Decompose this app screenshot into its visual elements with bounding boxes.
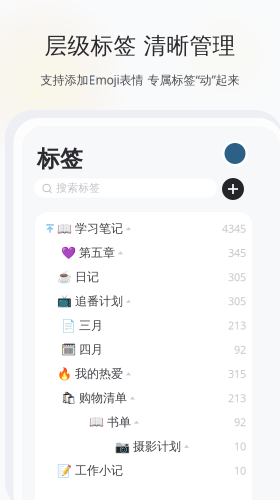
staticText: 层级标签 清晰管理 [44,32,235,60]
staticText: 我的热爱 [75,366,123,381]
button[interactable]: 📖 [35,410,252,434]
staticText: 追番计划 [75,294,123,308]
staticText: 📖 [89,415,104,429]
staticText: 📖 [57,222,72,235]
button[interactable]: ☕️ [35,265,252,289]
button[interactable]: 📷 [35,434,252,458]
staticText: 4345 [222,221,246,236]
staticText: 💜 [61,246,76,260]
staticText: 工作小记 [75,463,123,478]
staticText: 日记 [75,270,99,284]
button[interactable]: 📄 [35,313,252,337]
staticText: 第五章 [79,245,115,260]
staticText: 305 [228,294,246,308]
staticText: 213 [228,318,246,332]
button[interactable]: 📝 [35,458,252,483]
button[interactable]: 🛍 [35,386,252,410]
button[interactable]: 首字母 [216,227,249,240]
button[interactable]: 🔥 [35,362,252,386]
staticText: 92 [234,415,246,429]
button[interactable]: 📺 [35,289,252,313]
staticText: 书单 [107,415,131,429]
staticText: 搜索标签 [56,181,100,194]
staticText: 305 [228,270,246,284]
staticText: 📄 [61,318,76,332]
button[interactable]: 搜索标签 [34,178,217,197]
button[interactable]: 🗓 [35,337,252,362]
staticText: 摄影计划 [133,439,181,454]
staticText: 10 [234,463,246,478]
staticText: 315 [228,367,246,381]
button[interactable]: Add tag [222,178,244,200]
staticText: 213 [228,391,246,405]
staticText: 345 [228,246,246,260]
staticText: 四月 [79,342,103,357]
staticText: 92 [234,342,246,357]
staticText: 📝 [57,464,72,477]
staticText: 标签 [37,145,83,173]
staticText: 三月 [79,318,103,333]
staticText: 购物清单 [79,391,127,405]
staticText: 学习笔记 [75,221,123,236]
staticText: 📺 [57,294,72,308]
staticText: 🔥 [57,367,72,381]
staticText: ☕️ [57,270,72,284]
staticText: 首字母 [216,227,249,240]
staticText: 支持添加Emoji表情 专属标签“动”起来 [40,72,239,88]
button[interactable]: 💜 [35,241,252,265]
staticText: 📷 [115,439,130,453]
staticText: 🗓 [61,343,76,356]
staticText: 10 [234,439,246,453]
staticText: 🛍 [61,391,76,405]
button[interactable]: 📖 [35,216,252,241]
